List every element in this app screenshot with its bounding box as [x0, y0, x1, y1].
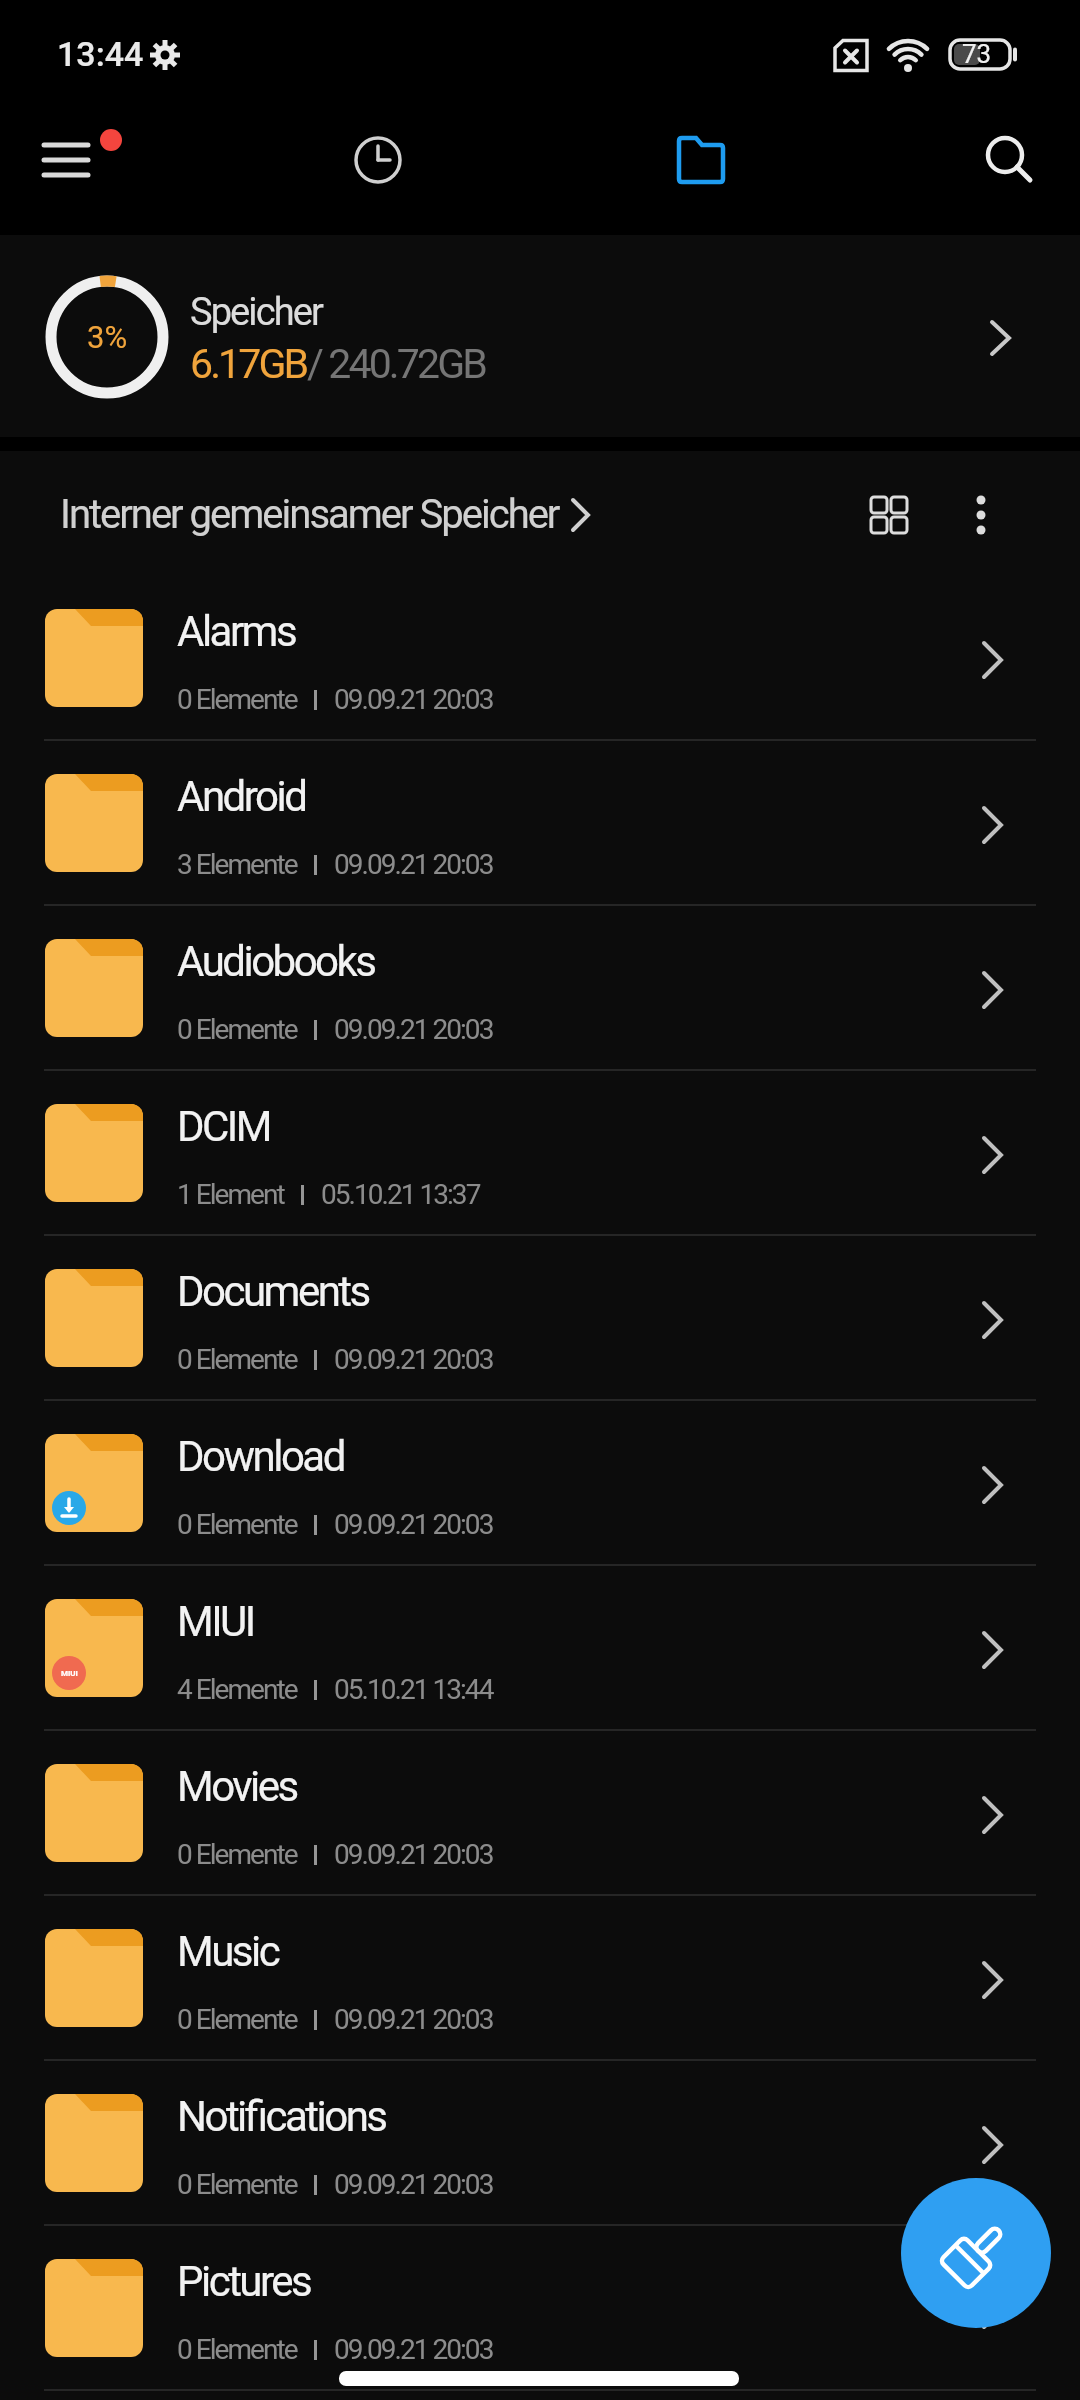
staticText: Download	[177, 1432, 344, 1481]
button[interactable]: Alarms	[0, 576, 1080, 741]
button[interactable]	[901, 2178, 1051, 2328]
staticText: 09.09.21 20:03	[334, 1343, 493, 1376]
button[interactable]: DCIM	[0, 1071, 1080, 1236]
staticText: Speicher	[190, 290, 322, 335]
staticText: Pictures	[177, 2257, 311, 2306]
staticText: 09.09.21 20:03	[334, 683, 493, 716]
button[interactable]	[963, 115, 1053, 205]
staticText: Alarms	[177, 607, 296, 656]
button[interactable]: Notifications	[0, 2061, 1080, 2226]
staticText: 09.09.21 20:03	[334, 1013, 493, 1046]
staticText: Interner gemeinsamer Speicher	[60, 491, 559, 538]
button[interactable]: Movies	[0, 1731, 1080, 1896]
staticText: 09.09.21 20:03	[334, 2168, 493, 2201]
staticText: 05.10.21 13:44	[334, 1673, 493, 1706]
staticText: 09.09.21 20:03	[334, 1508, 493, 1541]
staticText: DCIM	[177, 1102, 270, 1151]
staticText: 1 Element	[177, 1178, 284, 1211]
staticText: 09.09.21 20:03	[334, 848, 493, 881]
staticText: MIUI	[177, 1597, 254, 1646]
staticText: 0 Elemente	[177, 1343, 297, 1376]
staticText: Notifications	[177, 2092, 386, 2141]
staticText: 3%	[87, 319, 128, 355]
staticText: 6.17GB	[190, 340, 307, 388]
staticText: 09.09.21 20:03	[334, 2003, 493, 2036]
staticText: Android	[177, 772, 306, 821]
staticText: 0 Elemente	[177, 2003, 297, 2036]
button[interactable]: 3%	[0, 235, 1080, 437]
button[interactable]: Android	[0, 741, 1080, 906]
staticText: Audiobooks	[177, 937, 375, 986]
staticText: 09.09.21 20:03	[334, 1838, 493, 1871]
button[interactable]: Pictures	[0, 2226, 1080, 2391]
button[interactable]: Documents	[0, 1236, 1080, 1401]
button[interactable]: MIUI	[0, 1566, 1080, 1731]
staticText: 05.10.21 13:37	[321, 1178, 480, 1211]
staticText: 73	[962, 39, 992, 69]
staticText: / 240.72GB	[307, 340, 485, 388]
button[interactable]: Music	[0, 1896, 1080, 2061]
button[interactable]	[25, 115, 135, 205]
staticText: 13:44	[57, 34, 144, 74]
staticText: 0 Elemente	[177, 2333, 297, 2366]
staticText: 0 Elemente	[177, 1013, 297, 1046]
button[interactable]	[855, 483, 919, 547]
staticText: 09.09.21 20:03	[334, 2333, 493, 2366]
staticText: 0 Elemente	[177, 1838, 297, 1871]
button[interactable]	[656, 115, 746, 205]
staticText: Movies	[177, 1762, 297, 1811]
button[interactable]: Download	[0, 1401, 1080, 1566]
staticText: 3 Elemente	[177, 848, 297, 881]
staticText: MIUI	[61, 1669, 78, 1678]
button[interactable]	[948, 483, 1012, 547]
button[interactable]	[333, 115, 423, 205]
staticText: 0 Elemente	[177, 2168, 297, 2201]
staticText: 0 Elemente	[177, 1508, 297, 1541]
staticText: Documents	[177, 1267, 369, 1316]
staticText: 0 Elemente	[177, 683, 297, 716]
staticText: Music	[177, 1927, 279, 1976]
button[interactable]: Interner gemeinsamer Speicher	[60, 491, 588, 538]
button[interactable]: Audiobooks	[0, 906, 1080, 1071]
staticText: 4 Elemente	[177, 1673, 297, 1706]
